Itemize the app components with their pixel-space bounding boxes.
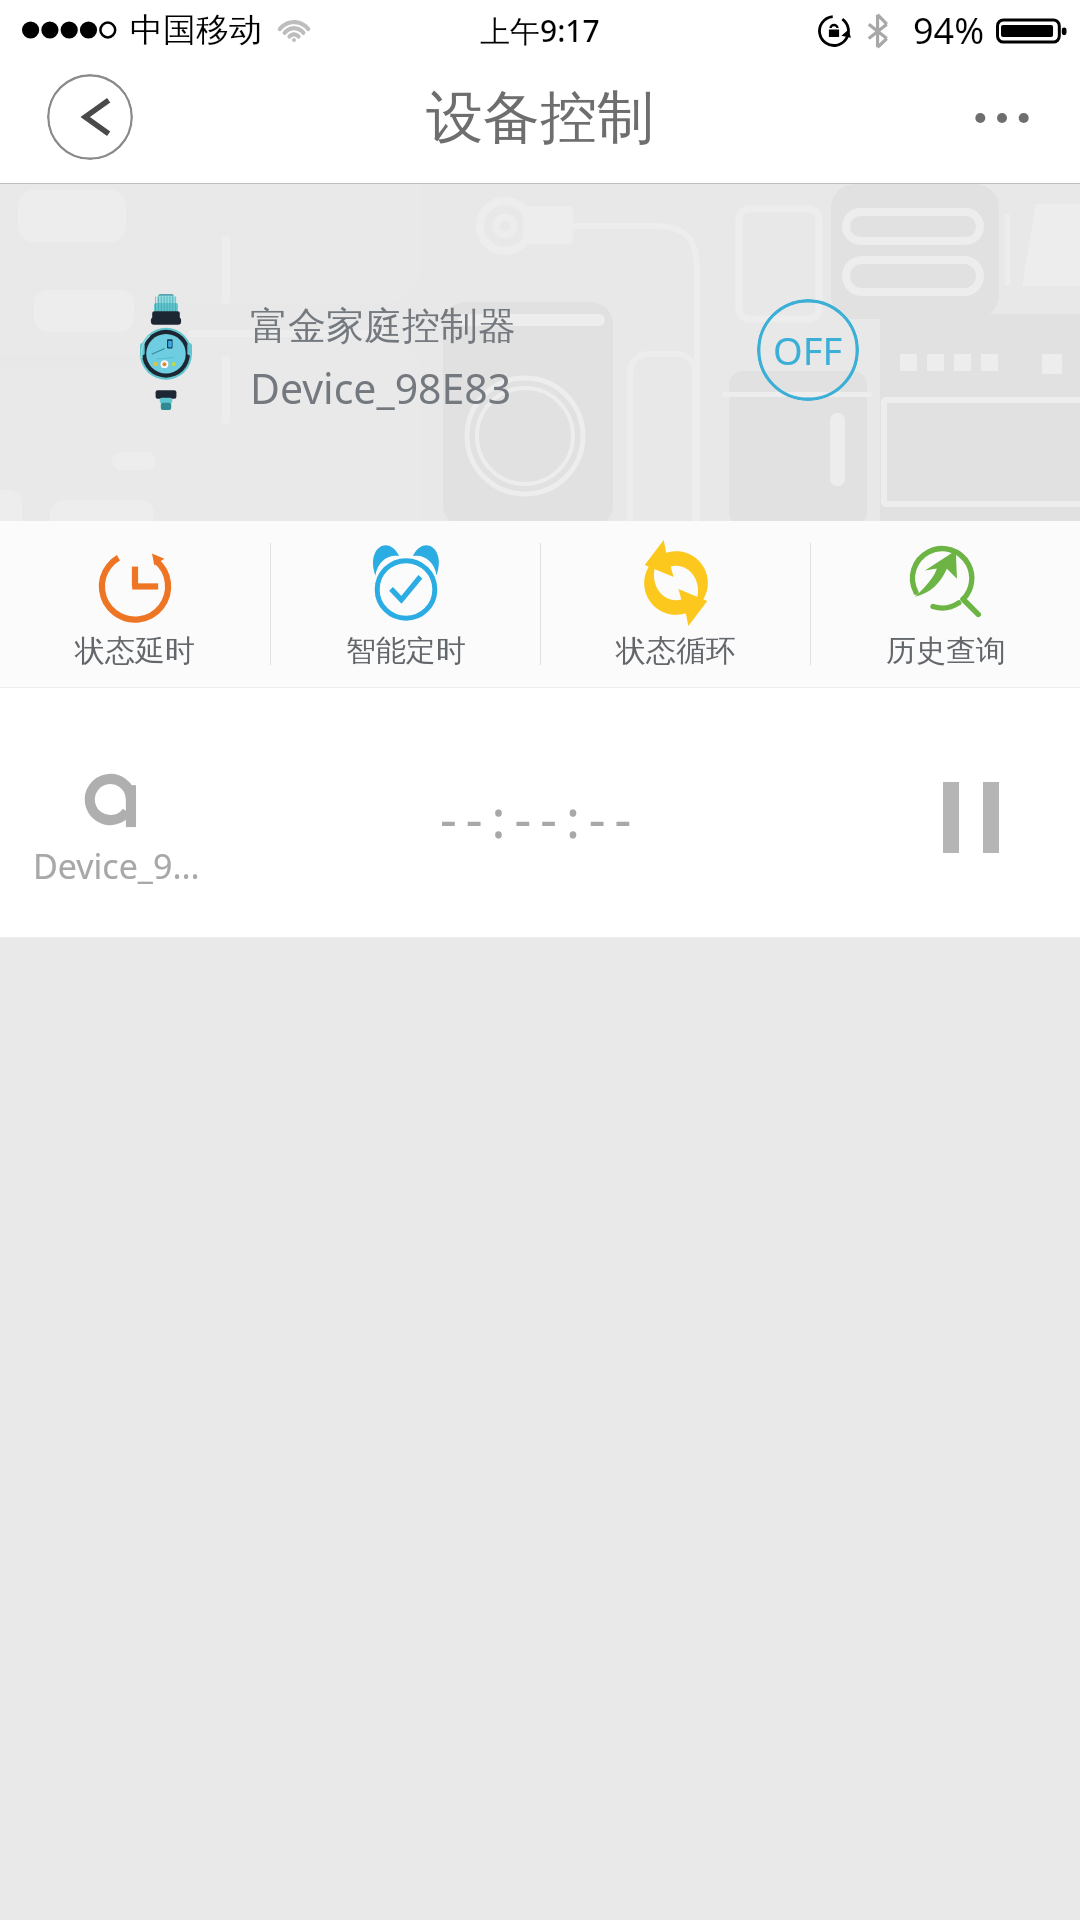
staticText: 设备控制	[426, 82, 654, 154]
staticText: OFF	[773, 324, 843, 376]
button[interactable]: Back	[47, 74, 133, 160]
button[interactable]: 智能定时	[271, 521, 540, 688]
staticText: 状态循环	[616, 632, 736, 670]
button[interactable]: 状态循环	[541, 521, 810, 688]
button[interactable]: 历史查询	[811, 521, 1080, 688]
staticText: Device_98E83	[250, 360, 512, 416]
staticText: 智能定时	[346, 632, 466, 670]
staticText: 富金家庭控制器	[250, 302, 516, 350]
button[interactable]: More options	[947, 63, 1057, 173]
button[interactable]: Pause	[923, 763, 1019, 871]
staticText: 状态延时	[75, 632, 195, 670]
staticText: --:--:--	[440, 782, 641, 853]
button[interactable]: OFF	[757, 299, 859, 401]
staticText: 上午9:17	[480, 10, 600, 51]
button[interactable]: Device_9...	[0, 688, 1080, 938]
staticText: 94%	[913, 6, 985, 55]
staticText: 历史查询	[886, 632, 1006, 670]
staticText: 中国移动	[130, 9, 262, 51]
staticText: Device_9...	[33, 843, 200, 889]
button[interactable]: 状态延时	[0, 521, 270, 688]
